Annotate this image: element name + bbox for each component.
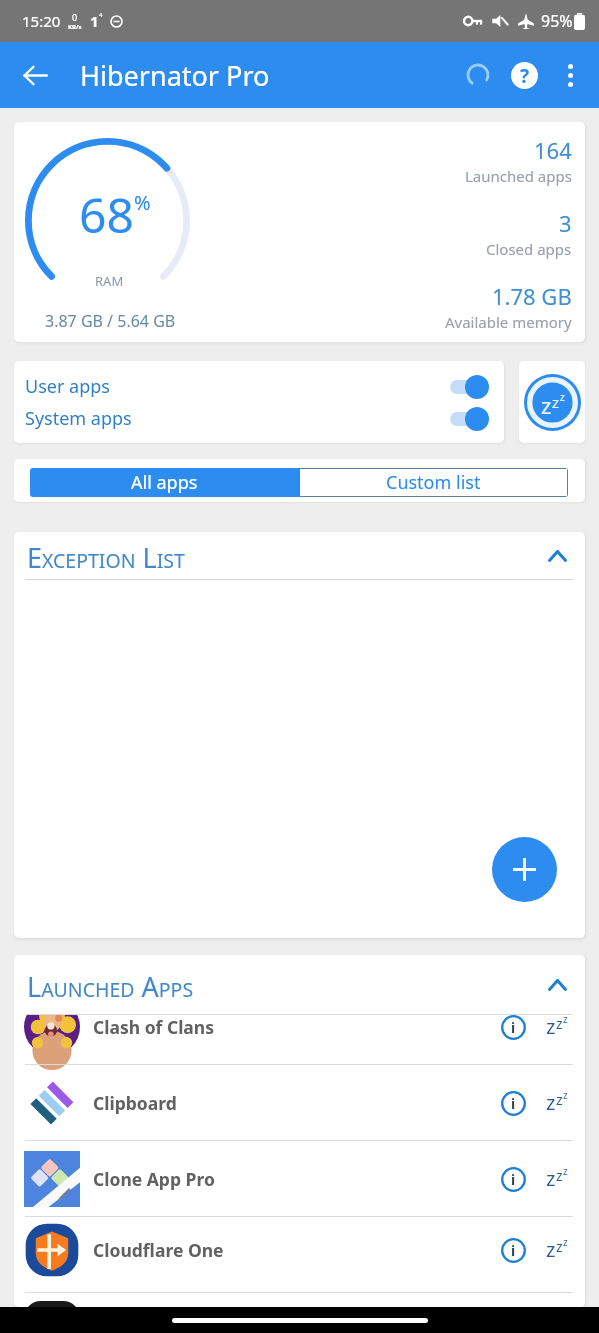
staticText: System apps [25,406,132,431]
staticText: Launched apps [465,166,572,186]
button[interactable]: User apps [25,374,489,399]
staticText: 0 [72,11,78,23]
staticText: i [511,1094,516,1113]
button[interactable]: Hibernate app [546,1014,576,1040]
staticText: Custom list [386,470,481,495]
staticText: LAUNCHED APPS [27,968,194,1005]
staticText: z [541,390,552,420]
button[interactable]: Clone App Pro [14,1141,585,1216]
staticText: 1.78 GB [492,281,572,311]
staticText: i [511,1241,516,1260]
staticText: % [134,189,151,216]
button[interactable]: System apps [25,406,489,431]
button[interactable]: Cloudflare One [14,1217,585,1282]
staticText: z [563,1088,568,1102]
staticText: RAM [95,272,124,290]
button[interactable]: Add exception [492,837,557,902]
staticText: z [556,1090,563,1109]
staticText: All apps [131,470,198,495]
button[interactable]: Collapse [538,966,576,1004]
button[interactable]: Custom list [300,469,567,496]
staticText: z [556,1014,563,1033]
staticText: z [546,1236,556,1263]
staticText: z [556,1166,563,1185]
staticText: z [563,1235,568,1249]
staticText: 95% [541,10,573,32]
staticText: 3 [559,208,572,238]
button[interactable]: Hibernate app [546,1165,576,1192]
staticText: EXCEPTION LIST [27,539,185,576]
staticText: i [511,1170,516,1189]
button[interactable]: App info [496,1014,530,1044]
staticText: z [560,390,565,404]
staticText: z [563,1014,568,1026]
staticText: i [511,1018,516,1037]
button[interactable]: All apps [30,468,299,497]
button[interactable]: Back [12,52,58,98]
button[interactable]: Help [501,52,547,98]
button[interactable]: App info [496,1086,530,1120]
button[interactable]: App info [496,1162,530,1196]
staticText: 4 [99,11,103,19]
staticText: Cloudflare One [93,1238,224,1262]
staticText: z [556,1237,563,1256]
staticText: 164 [534,135,572,165]
button[interactable]: App info [496,1233,530,1267]
button[interactable]: Hibernate app [546,1236,576,1263]
staticText: User apps [25,374,110,399]
staticText: 68 [79,182,134,247]
staticText: Available memory [445,312,572,332]
staticText: z [563,1164,568,1178]
button[interactable]: Collapse [538,537,576,575]
staticText: Closed apps [486,239,572,259]
staticText: Clipboard [93,1091,177,1115]
staticText: Clone App Pro [93,1167,215,1191]
staticText: z [552,392,560,412]
button[interactable]: Hibernate app [546,1089,576,1116]
staticText: 3.87 GB / 5.64 GB [45,310,176,332]
staticText: z [546,1014,556,1040]
staticText: z [546,1089,556,1116]
staticText: z [546,1165,556,1192]
button[interactable]: Hibernate now [519,361,585,443]
staticText: KB/s [68,23,82,31]
staticText: 15:20 [22,11,61,31]
button[interactable]: Clash of Clans [14,1014,585,1064]
button[interactable]: More options [547,52,593,98]
staticText: Clash of Clans [93,1015,214,1039]
staticText: Hibernator Pro [80,57,270,94]
button[interactable]: Refresh [455,52,501,98]
staticText: ? [520,63,530,89]
staticText: 1 [90,11,99,31]
button[interactable]: Clipboard [14,1065,585,1140]
